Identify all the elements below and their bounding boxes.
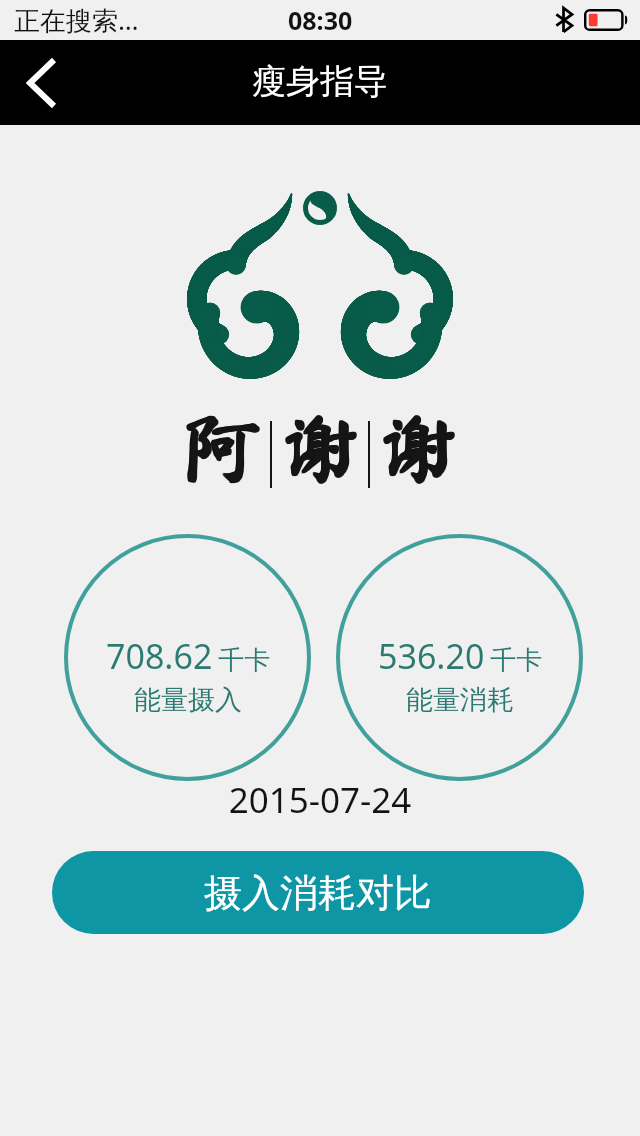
- staticText: 谢: [381, 407, 460, 485]
- staticText: 阿: [184, 409, 263, 487]
- staticText: 2015-07-24: [0, 776, 640, 824]
- staticText: 阿: [183, 409, 262, 487]
- staticText: 谢: [283, 407, 362, 485]
- staticText: 摄入消耗对比: [204, 869, 432, 917]
- staticText: 阿: [183, 407, 262, 485]
- staticText: 谢: [380, 408, 459, 486]
- button[interactable]: Back: [0, 41, 84, 125]
- staticText: 08:30: [288, 3, 353, 37]
- staticText: 能量消耗: [406, 683, 514, 717]
- staticText: 谢: [381, 408, 460, 486]
- staticText: 谢: [379, 409, 458, 487]
- staticText: 阿: [185, 409, 264, 487]
- staticText: 阿: [185, 408, 264, 486]
- staticText: 阿: [184, 407, 263, 485]
- staticText: 谢: [283, 409, 362, 487]
- button[interactable]: 708.62: [64, 534, 311, 781]
- staticText: 谢: [282, 407, 361, 485]
- staticText: 谢: [282, 409, 361, 487]
- staticText: 536.20: [378, 633, 485, 679]
- staticText: 谢: [379, 407, 458, 485]
- staticText: 谢: [281, 409, 360, 487]
- staticText: 708.62: [106, 633, 213, 679]
- staticText: 千卡: [490, 644, 542, 677]
- button[interactable]: 536.20: [336, 534, 583, 781]
- staticText: 谢: [381, 409, 460, 487]
- staticText: 谢: [379, 408, 458, 486]
- staticText: 谢: [380, 407, 459, 485]
- staticText: 谢: [281, 407, 360, 485]
- button[interactable]: 摄入消耗对比: [52, 851, 584, 934]
- staticText: 千卡: [218, 644, 270, 677]
- staticText: 谢: [282, 408, 361, 486]
- staticText: 瘦身指导: [252, 60, 388, 103]
- staticText: 阿: [185, 407, 264, 485]
- staticText: 阿: [183, 408, 262, 486]
- staticText: 正在搜索…: [14, 2, 139, 38]
- staticText: 能量摄入: [134, 683, 242, 717]
- staticText: 谢: [283, 408, 362, 486]
- staticText: 谢: [281, 408, 360, 486]
- staticText: 谢: [380, 409, 459, 487]
- staticText: 阿: [184, 408, 263, 486]
